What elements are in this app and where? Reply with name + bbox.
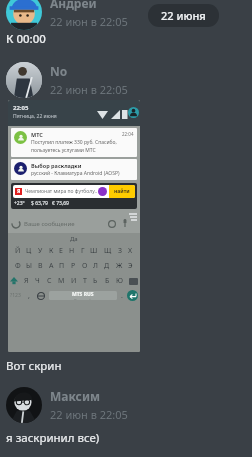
button[interactable]: Г: [81, 246, 85, 256]
button[interactable]: Ф: [15, 261, 21, 271]
staticText: Ваше сообщение: [24, 220, 75, 228]
staticText: Ч: [35, 276, 40, 286]
button[interactable]: Андрей: [0, 0, 252, 34]
staticText: И: [71, 276, 77, 286]
staticText: Я: [17, 188, 21, 195]
staticText: Т: [83, 276, 87, 286]
button[interactable]: Account: [128, 107, 139, 118]
staticText: 22 июня: [161, 8, 206, 23]
staticText: С: [47, 276, 52, 286]
staticText: М: [58, 276, 65, 286]
staticText: Да: [70, 235, 78, 243]
staticText: П: [59, 261, 65, 271]
staticText: А: [49, 261, 54, 271]
button[interactable]: Shift: [10, 277, 18, 285]
staticText: 22 июн в 22:05: [50, 407, 128, 422]
staticText: Г: [81, 246, 85, 256]
staticText: Я: [24, 276, 29, 286]
button[interactable]: Ж: [116, 261, 123, 271]
button[interactable]: ?123: [10, 292, 21, 299]
staticText: Щ: [104, 246, 112, 256]
staticText: Вот скрин: [6, 358, 62, 374]
staticText: 22 июн в 22:05: [50, 82, 128, 97]
staticText: Б: [105, 276, 110, 286]
staticText: Ш: [90, 246, 98, 256]
button[interactable]: Ц: [26, 246, 32, 256]
staticText: я заскринил все): [6, 430, 100, 446]
button[interactable]: Выбор раскладки: [11, 159, 137, 180]
staticText: $ 63,79: [31, 200, 48, 207]
button[interactable]: Е: [59, 246, 63, 256]
staticText: MTS RUS: [72, 291, 94, 298]
button[interactable]: Enter: [127, 290, 138, 301]
staticText: найти: [114, 188, 130, 195]
button[interactable]: О: [82, 261, 88, 271]
staticText: Э: [128, 261, 133, 271]
staticText: 22:05: [13, 104, 29, 112]
button[interactable]: Р: [71, 261, 76, 271]
button[interactable]: В: [38, 261, 43, 271]
button[interactable]: MTS RUS: [49, 291, 117, 300]
button[interactable]: К: [49, 246, 54, 256]
button[interactable]: Щ: [104, 246, 112, 256]
staticText: Русский: [74, 298, 92, 300]
staticText: У: [38, 246, 43, 256]
staticText: пользуетесь услугами МТС: [31, 147, 96, 154]
button[interactable]: No: [0, 58, 252, 102]
button[interactable]: Ш: [90, 246, 98, 256]
button[interactable]: А: [49, 261, 54, 271]
staticText: Ф: [15, 261, 21, 271]
button[interactable]: Language: [37, 292, 45, 300]
button[interactable]: Л: [93, 261, 98, 271]
staticText: Р: [71, 261, 76, 271]
button[interactable]: Backspace: [129, 278, 138, 285]
button[interactable]: Photo: [8, 100, 140, 352]
staticText: О: [82, 261, 88, 271]
staticText: Пятница, 22 июня: [13, 113, 57, 120]
staticText: К 00:00: [6, 31, 46, 47]
button[interactable]: Максим: [0, 383, 252, 427]
button[interactable]: 22 июня: [148, 4, 219, 27]
staticText: МТС: [31, 131, 43, 138]
staticText: Е: [59, 246, 63, 256]
staticText: Андрей: [50, 0, 97, 11]
button[interactable]: Д: [104, 261, 110, 271]
staticText: € 73,69: [52, 200, 69, 207]
button[interactable]: найти: [109, 185, 135, 198]
staticText: Поступил платеж 330 руб. Спасибо, что: [31, 139, 122, 146]
button[interactable]: Э: [128, 261, 133, 271]
staticText: .: [121, 291, 123, 301]
staticText: Х: [128, 246, 133, 256]
staticText: ,: [28, 291, 30, 301]
button[interactable]: Voice search: [98, 187, 107, 196]
staticText: 22 июн в 22:05: [50, 14, 128, 29]
staticText: Максим: [50, 388, 101, 404]
staticText: Н: [69, 246, 75, 256]
staticText: Й: [15, 246, 21, 256]
button[interactable]: Х: [128, 246, 133, 256]
staticText: 22:04: [122, 131, 134, 137]
staticText: Ц: [26, 246, 32, 256]
staticText: русский - Клавиатура Android (AOSP): [31, 170, 120, 177]
staticText: Ь: [93, 276, 98, 286]
staticText: Ы: [26, 261, 32, 271]
button[interactable]: Н: [69, 246, 75, 256]
staticText: Ю: [116, 276, 123, 286]
staticText: No: [50, 63, 68, 79]
button[interactable]: У: [38, 246, 43, 256]
staticText: Чемпионат мира по футболу..: [25, 188, 98, 195]
staticText: З: [118, 246, 123, 256]
button[interactable]: З: [118, 246, 123, 256]
staticText: Выбор раскладки: [31, 162, 82, 169]
button[interactable]: МТС: [11, 128, 137, 157]
button[interactable]: Ы: [26, 261, 32, 271]
button[interactable]: Я: [11, 183, 137, 209]
staticText: Д: [104, 261, 110, 271]
staticText: Ж: [116, 261, 123, 271]
button[interactable]: Й: [15, 246, 21, 256]
button[interactable]: П: [59, 261, 65, 271]
staticText: К: [49, 246, 54, 256]
staticText: В: [38, 261, 43, 271]
staticText: Л: [93, 261, 98, 271]
staticText: +23°: [14, 200, 25, 207]
